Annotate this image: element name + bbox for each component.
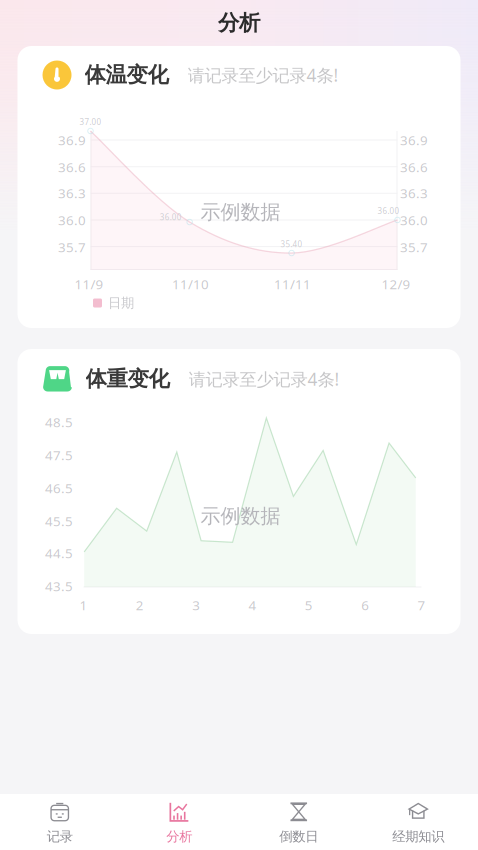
staticText: 分析	[218, 10, 260, 36]
button[interactable]: 记录	[0, 790, 119, 850]
staticText: 37.00	[79, 117, 101, 127]
button[interactable]: 分析	[119, 790, 239, 850]
staticText: 2	[136, 596, 144, 614]
staticText: 11/9	[74, 275, 103, 293]
staticText: 请记录至少记录4条!	[187, 63, 338, 86]
staticText: 36.3	[58, 184, 86, 202]
staticText: 36.6	[400, 158, 428, 176]
staticText: 7	[417, 596, 425, 614]
staticText: 35.7	[58, 238, 86, 256]
staticText: 47.5	[45, 446, 73, 464]
staticText: 4	[248, 596, 256, 614]
staticText: 36.3	[400, 184, 428, 202]
staticText: 日期	[108, 295, 134, 311]
staticText: 46.5	[45, 479, 73, 497]
staticText: 48.5	[45, 413, 73, 431]
staticText: 11/10	[172, 275, 209, 293]
staticText: 体温变化	[84, 62, 168, 88]
staticText: 36.0	[400, 211, 428, 229]
staticText: 示例数据	[200, 200, 280, 224]
staticText: 经期知识	[392, 828, 444, 845]
staticText: 分析	[166, 828, 192, 845]
staticText: 43.5	[45, 577, 73, 595]
staticText: 36.00	[377, 206, 399, 216]
staticText: 36.00	[160, 212, 182, 222]
staticText: 3	[192, 596, 200, 614]
staticText: 36.0	[58, 211, 86, 229]
staticText: 倒数日	[279, 828, 318, 845]
staticText: 示例数据	[200, 504, 280, 528]
staticText: 35.40	[281, 239, 303, 249]
staticText: 44.5	[45, 544, 73, 562]
staticText: 体重变化	[85, 366, 169, 392]
staticText: 45.5	[45, 512, 73, 530]
staticText: 请记录至少记录4条!	[188, 367, 339, 390]
staticText: 36.9	[58, 131, 86, 149]
staticText: 11/11	[274, 275, 311, 293]
staticText: 12/9	[381, 275, 410, 293]
button[interactable]: 倒数日	[239, 790, 358, 850]
staticText: 5	[305, 596, 313, 614]
staticText: 6	[361, 596, 369, 614]
staticText: 36.6	[58, 158, 86, 176]
staticText: 记录	[47, 828, 73, 845]
staticText: 1	[79, 596, 87, 614]
staticText: 36.9	[400, 131, 428, 149]
button[interactable]: 经期知识	[358, 790, 478, 850]
staticText: 35.7	[400, 238, 428, 256]
